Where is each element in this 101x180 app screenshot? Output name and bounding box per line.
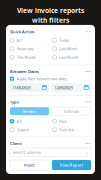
staticText: ••• — [85, 99, 91, 105]
staticText: ••• — [85, 141, 91, 146]
button[interactable]: Paid — [52, 118, 91, 125]
button[interactable]: More options — [85, 29, 91, 34]
staticText: View invoice reports — [17, 6, 84, 15]
staticText: Last Month — [59, 55, 78, 60]
button[interactable]: Today — [52, 37, 91, 44]
staticText: Last Week — [59, 46, 77, 51]
staticText: Type — [10, 99, 19, 105]
button[interactable]: More options — [85, 69, 91, 74]
staticText: ••• — [85, 29, 91, 34]
staticText: with filters — [32, 16, 69, 25]
staticText: Client — [10, 141, 22, 146]
button[interactable]: Invoice — [10, 107, 49, 115]
button[interactable]: All — [10, 37, 48, 44]
button[interactable]: 12/05/2023 — [52, 83, 91, 92]
staticText: Quick Action — [10, 29, 35, 34]
button[interactable]: All — [10, 118, 48, 125]
button[interactable]: 11/06/2023 — [10, 83, 49, 92]
staticText: Today — [59, 38, 69, 43]
button[interactable]: View Report — [52, 160, 91, 170]
button[interactable]: This Month — [10, 54, 48, 61]
button[interactable]: Reset — [10, 160, 49, 170]
staticText: 11/06/2023 — [12, 85, 30, 90]
staticText: 12/05/2023 — [54, 85, 72, 90]
button[interactable]: Last Week — [52, 45, 91, 52]
button[interactable]: Last Month — [52, 54, 91, 61]
staticText: Estimate — [64, 108, 79, 114]
button[interactable]: More options — [85, 141, 91, 146]
staticText: All — [16, 38, 21, 43]
staticText: ••• — [85, 69, 91, 74]
button[interactable]: More options — [85, 99, 91, 105]
staticText: Between Dates — [10, 69, 39, 74]
button[interactable]: Estimate — [52, 107, 91, 115]
staticText: Invoice — [23, 108, 36, 114]
staticText: Select Customer — [12, 150, 41, 155]
staticText: Overdue — [59, 127, 74, 132]
staticText: Yesterday — [16, 46, 33, 51]
button[interactable]: Yesterday — [10, 45, 48, 52]
staticText: Reset — [24, 162, 35, 168]
staticText: This Month — [16, 55, 35, 60]
button[interactable]: Select Customer — [10, 148, 91, 156]
button[interactable]: Overdue — [52, 126, 91, 133]
staticText: Paid — [59, 118, 66, 124]
staticText: View Report — [59, 162, 83, 168]
staticText: ⌄ — [85, 150, 88, 154]
staticText: Apply filter between two dates — [16, 76, 67, 81]
button[interactable]: Unpaid — [10, 126, 48, 133]
staticText: Unpaid — [16, 127, 28, 132]
button[interactable]: Apply filter between two dates — [10, 76, 91, 81]
staticText: All — [16, 118, 21, 124]
